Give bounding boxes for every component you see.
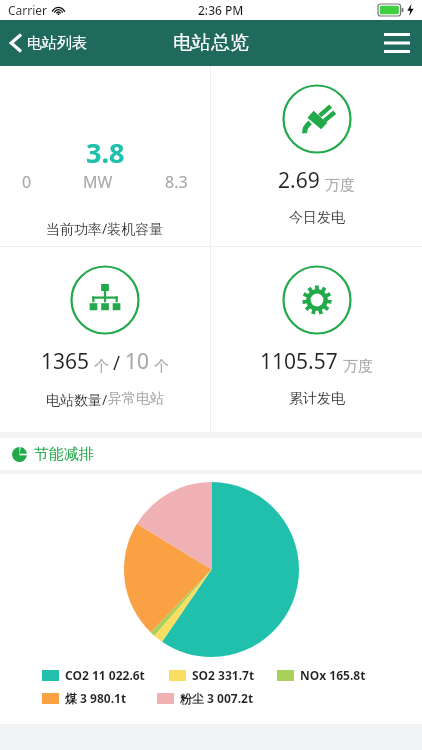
staticText: NOx 165.8t bbox=[300, 667, 366, 683]
staticText: Carrier bbox=[8, 2, 48, 18]
staticText: 2.69 bbox=[278, 166, 320, 195]
staticText: CO2 11 022.6t bbox=[65, 667, 145, 683]
staticText: 3.8 bbox=[86, 134, 125, 171]
staticText: 节能减排 bbox=[34, 445, 94, 464]
staticText: 2:36 PM bbox=[198, 2, 244, 18]
staticText: 个 bbox=[154, 357, 169, 376]
staticText: 10 bbox=[125, 347, 150, 376]
staticText: SO2 331.7t bbox=[192, 667, 255, 683]
button[interactable]: 3.8 bbox=[0, 66, 210, 246]
button[interactable]: 1105.57 bbox=[211, 247, 422, 432]
staticText: 异常电站 bbox=[108, 390, 164, 408]
staticText: 今日发电 bbox=[289, 209, 345, 227]
staticText: 粉尘 3 007.2t bbox=[180, 690, 254, 706]
button[interactable]: 电站列表 bbox=[0, 27, 99, 59]
button[interactable]: Menu bbox=[372, 25, 422, 61]
staticText: 1105.57 bbox=[260, 347, 338, 376]
staticText: 8.3 bbox=[165, 171, 188, 193]
button[interactable]: 2.69 bbox=[211, 66, 422, 246]
staticText: MW bbox=[83, 171, 113, 193]
staticText: 电站列表 bbox=[27, 34, 87, 53]
staticText: 电站总览 bbox=[173, 31, 249, 55]
staticText: 0 bbox=[22, 171, 32, 193]
staticText: 电站数量/ bbox=[46, 390, 108, 409]
staticText: 个 bbox=[94, 357, 109, 376]
staticText: 累计发电 bbox=[289, 390, 345, 408]
staticText: 万度 bbox=[343, 357, 373, 376]
staticText: 煤 3 980.1t bbox=[65, 690, 127, 706]
staticText: 当前功率/装机容量 bbox=[46, 219, 164, 238]
staticText: 1365 bbox=[41, 347, 90, 376]
button[interactable]: 1365 bbox=[0, 247, 210, 432]
staticText: / bbox=[113, 350, 121, 376]
staticText: 万度 bbox=[325, 176, 355, 195]
